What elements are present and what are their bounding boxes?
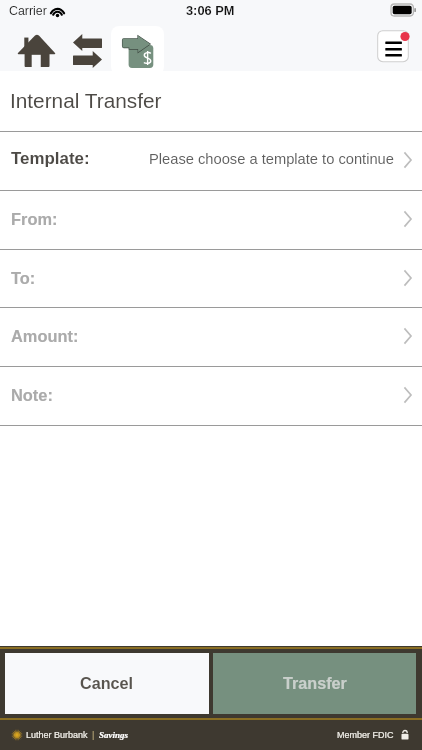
staticText: 3:06 PM xyxy=(186,3,235,17)
staticText: Please choose a template to continue xyxy=(149,151,394,167)
button[interactable]: To: xyxy=(0,249,422,308)
staticText: Note: xyxy=(11,386,53,404)
button[interactable]: Cancel xyxy=(5,653,209,714)
button[interactable]: Transfer xyxy=(213,653,416,714)
button[interactable]: Template: xyxy=(0,131,422,190)
button[interactable]: Note: xyxy=(0,366,422,425)
button[interactable]: Internal Transfer xyxy=(111,26,164,75)
button[interactable]: Menu xyxy=(376,29,410,63)
staticText: To: xyxy=(11,269,36,287)
staticText: Luther Burbank xyxy=(26,730,88,740)
button[interactable]: Transfers xyxy=(60,23,113,71)
staticText: Transfer xyxy=(283,674,347,692)
staticText: Savings xyxy=(99,730,129,740)
staticText: Cancel xyxy=(80,674,134,692)
staticText: Carrier xyxy=(9,4,47,18)
staticText: Internal Transfer xyxy=(10,89,162,112)
button[interactable]: From: xyxy=(0,190,422,249)
button[interactable]: Amount: xyxy=(0,307,422,366)
staticText: | xyxy=(92,730,95,740)
button[interactable]: Home xyxy=(5,23,59,71)
staticText: From: xyxy=(11,210,58,228)
staticText: Member FDIC xyxy=(337,730,394,740)
staticText: Amount: xyxy=(11,327,79,345)
staticText: Template: xyxy=(11,149,90,168)
